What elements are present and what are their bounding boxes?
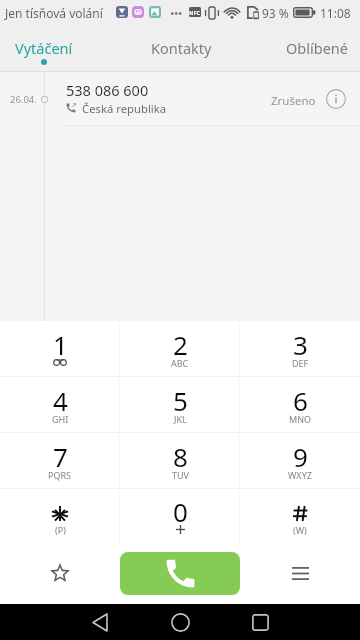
staticText: TUV [172, 469, 189, 481]
staticText: Vytáčení [15, 38, 73, 58]
button[interactable]: 26.04. [0, 72, 360, 126]
button[interactable]: 4 [0, 377, 120, 433]
staticText: WXYZ [288, 469, 312, 481]
staticText: 11:08 [320, 5, 351, 21]
button[interactable]: 7 [0, 433, 120, 489]
staticText: Oblíbené [286, 38, 348, 58]
button[interactable]: Volat [120, 552, 240, 595]
button[interactable]: 0 [120, 488, 240, 544]
button[interactable]: 9 [240, 433, 360, 489]
staticText: 7 [53, 439, 68, 474]
button[interactable]: Oblíbené [249, 26, 360, 72]
staticText: 4 [53, 383, 68, 418]
staticText: MNO [289, 413, 312, 425]
staticText: 9 [293, 439, 308, 474]
staticText: 538 086 600 [66, 80, 149, 100]
staticText: PQRS [48, 469, 72, 481]
button[interactable]: Zpět [76, 604, 124, 640]
staticText: 5 [173, 383, 188, 418]
staticText: Jen tísňová volání [5, 5, 103, 21]
staticText: 1 [53, 327, 68, 362]
staticText: 3 [293, 327, 308, 362]
button[interactable]: Vytáčení [0, 26, 112, 72]
button[interactable]: 1 [0, 321, 120, 377]
staticText: 8 [173, 439, 188, 474]
button[interactable]: Nabídka [277, 551, 324, 595]
staticText: 6 [293, 383, 308, 418]
staticText: ABC [171, 357, 189, 369]
staticText: NFC [189, 9, 201, 16]
staticText: 93 % [262, 5, 289, 21]
button[interactable]: 2 [120, 321, 240, 377]
staticText: 26.04. [10, 93, 37, 106]
staticText: JKL [174, 413, 187, 425]
staticText: 0 [173, 494, 188, 529]
button[interactable]: Domů [156, 604, 204, 640]
staticText: GHI [52, 413, 69, 425]
button[interactable]: (P) [0, 488, 120, 544]
button[interactable]: Podrobnosti [324, 87, 348, 111]
staticText: (P) [55, 524, 66, 536]
button[interactable]: (W) [240, 488, 360, 544]
button[interactable]: 8 [120, 433, 240, 489]
staticText: Česká republika [82, 101, 167, 116]
staticText: 2 [173, 327, 188, 362]
button[interactable]: 5 [120, 377, 240, 433]
button[interactable]: Kontakty [113, 26, 249, 72]
button[interactable]: Poslední aplikace [236, 604, 284, 640]
staticText: DEF [292, 357, 309, 369]
staticText: Kontakty [151, 38, 212, 58]
button[interactable]: 6 [240, 377, 360, 433]
button[interactable]: Oblíbené [36, 551, 83, 595]
staticText: Zrušeno [271, 93, 316, 109]
staticText: (W) [293, 524, 307, 536]
button[interactable]: 3 [240, 321, 360, 377]
